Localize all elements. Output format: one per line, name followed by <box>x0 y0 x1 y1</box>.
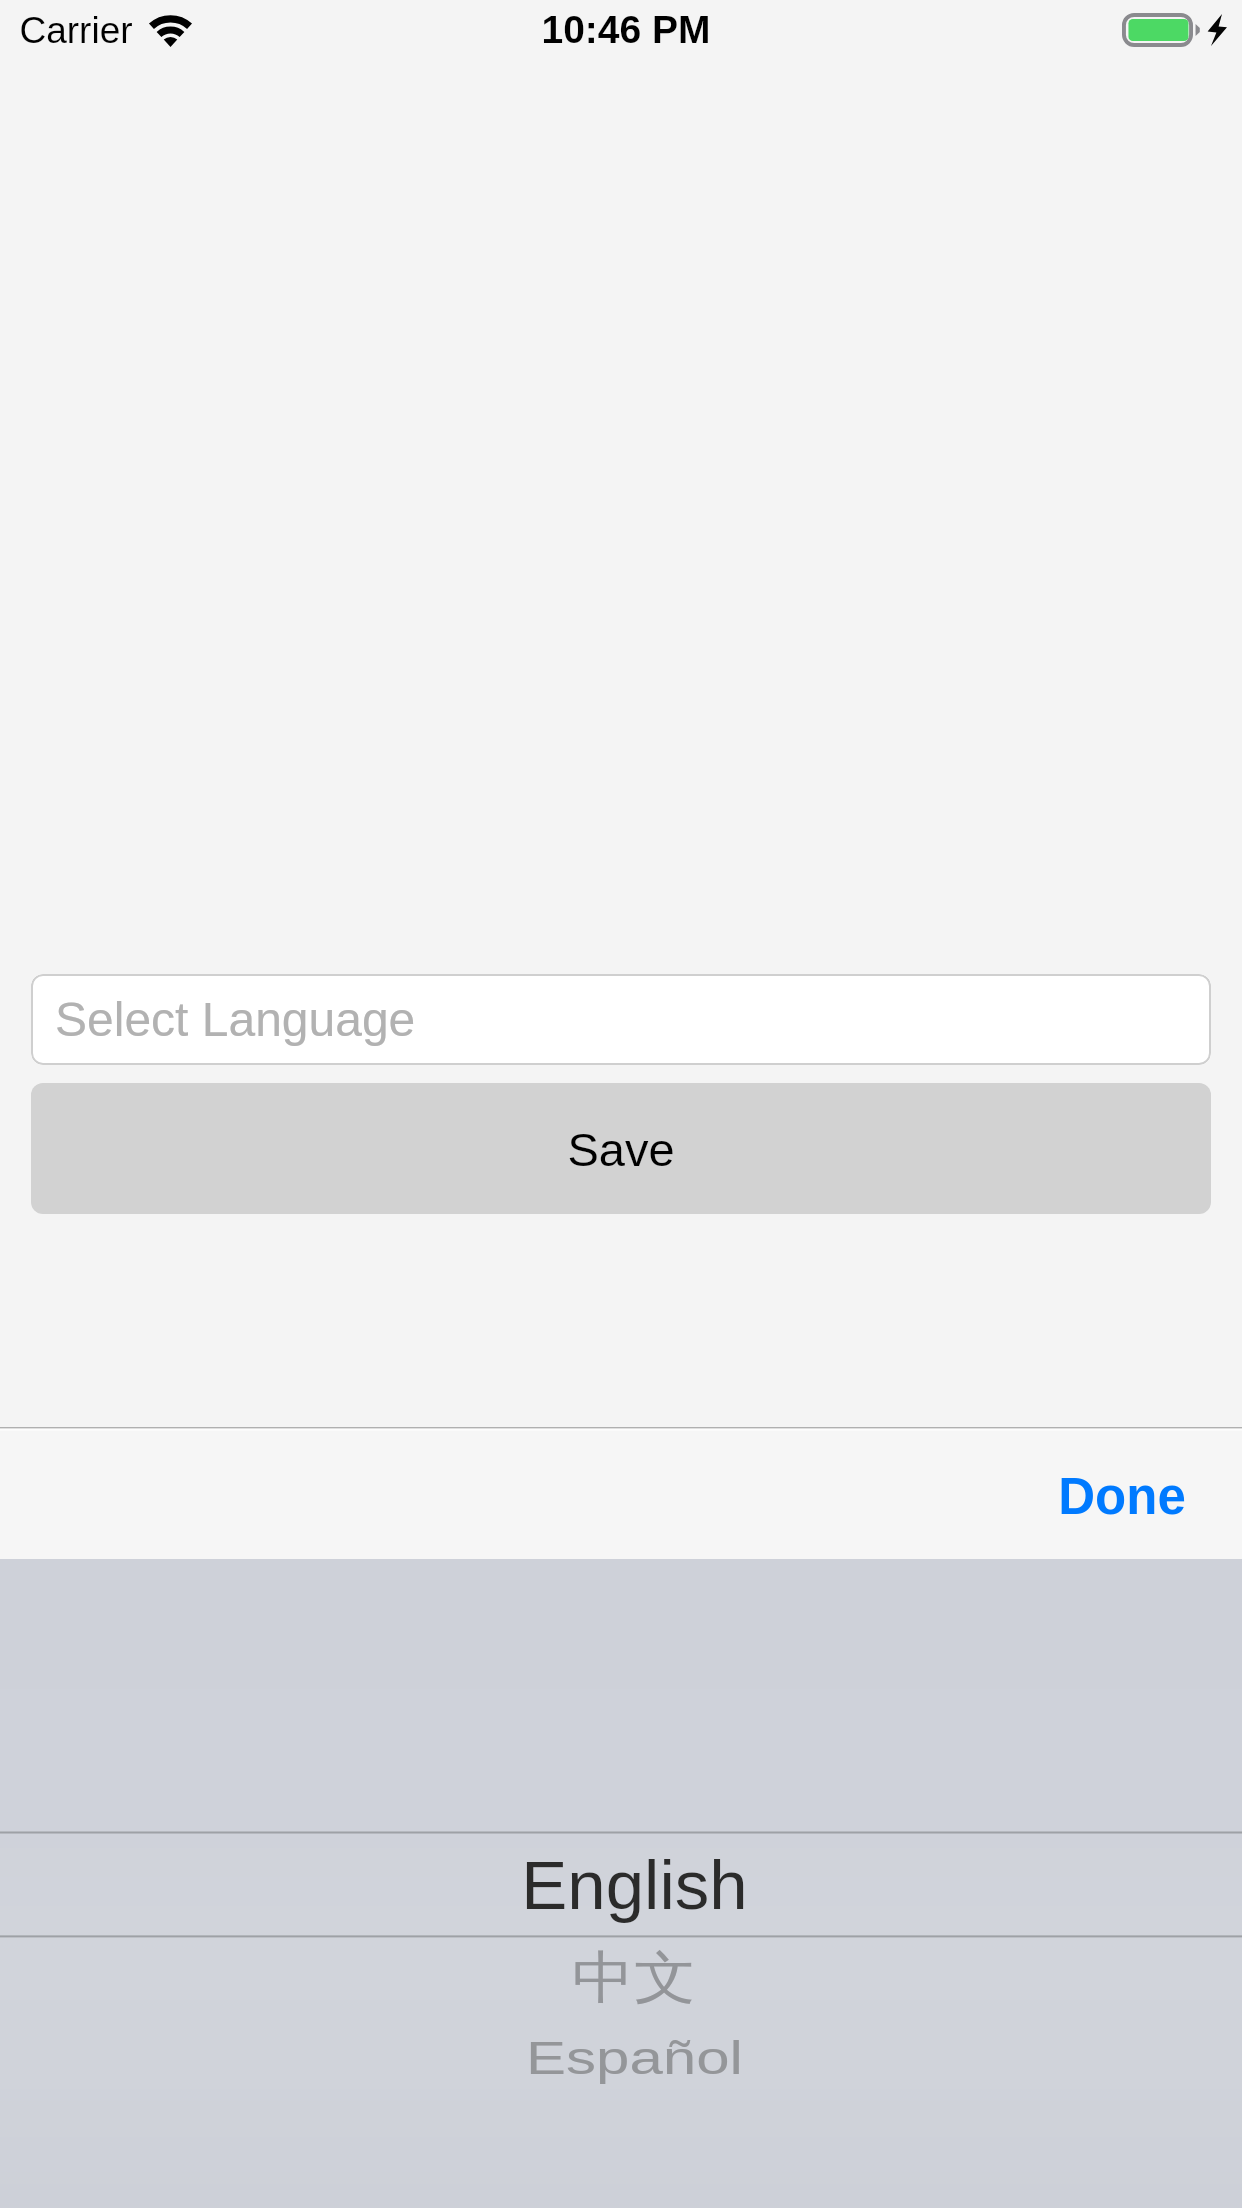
staticText: Select Language <box>55 993 416 1047</box>
button[interactable]: Select Language <box>31 974 1211 1065</box>
staticText: 10:46 PM <box>541 8 711 52</box>
staticText: Done <box>1058 1468 1186 1525</box>
staticText: Save <box>567 1123 675 1176</box>
staticText: 中文 <box>572 1942 696 2013</box>
other: Battery charging <box>1122 13 1201 47</box>
button[interactable]: English <box>0 1831 1242 1935</box>
staticText: Carrier <box>19 10 133 51</box>
other: Wi-Fi signal <box>149 15 192 47</box>
button[interactable]: Español <box>0 2021 1242 2095</box>
staticText: English <box>521 1847 748 1924</box>
button[interactable]: Done <box>1058 1468 1186 1525</box>
staticText: Español <box>526 2033 743 2084</box>
button[interactable]: Save <box>31 1083 1211 1214</box>
other: Charging <box>1207 14 1227 46</box>
button[interactable]: 中文 <box>0 1937 1242 2017</box>
